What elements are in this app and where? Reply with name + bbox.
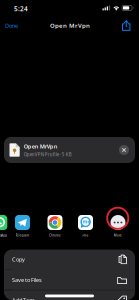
staticText: WhatsApp — [0, 233, 7, 237]
button[interactable]: Add Tags — [4, 290, 135, 300]
staticText: imo — [80, 218, 90, 225]
button[interactable]: imo — [70, 215, 100, 240]
staticText: Add Tags — [12, 296, 35, 300]
staticText: Telegram — [15, 233, 29, 237]
button[interactable]: Telegram — [7, 215, 37, 240]
button[interactable]: Copy — [4, 249, 135, 269]
button[interactable]: Chrome — [40, 215, 70, 240]
staticText: 5:24 — [14, 4, 28, 13]
button[interactable]: More — [103, 215, 133, 240]
button[interactable]: Close — [119, 145, 129, 155]
button[interactable]: Share — [121, 20, 131, 31]
staticText: Copy — [12, 256, 25, 263]
staticText: imo — [82, 233, 88, 237]
staticText: Chrome — [49, 233, 61, 237]
button[interactable]: Save to Files — [4, 270, 135, 290]
staticText: OpenVPN Profile · 5 KB — [24, 151, 72, 157]
staticText: Open MrVpn — [50, 21, 90, 30]
staticText: Save to Files — [12, 276, 42, 284]
staticText: Done — [5, 22, 18, 29]
button[interactable]: WhatsApp — [0, 215, 15, 240]
staticText: More — [114, 233, 122, 237]
staticText: Open MrVpn — [24, 142, 58, 150]
button[interactable]: Done — [5, 21, 27, 30]
